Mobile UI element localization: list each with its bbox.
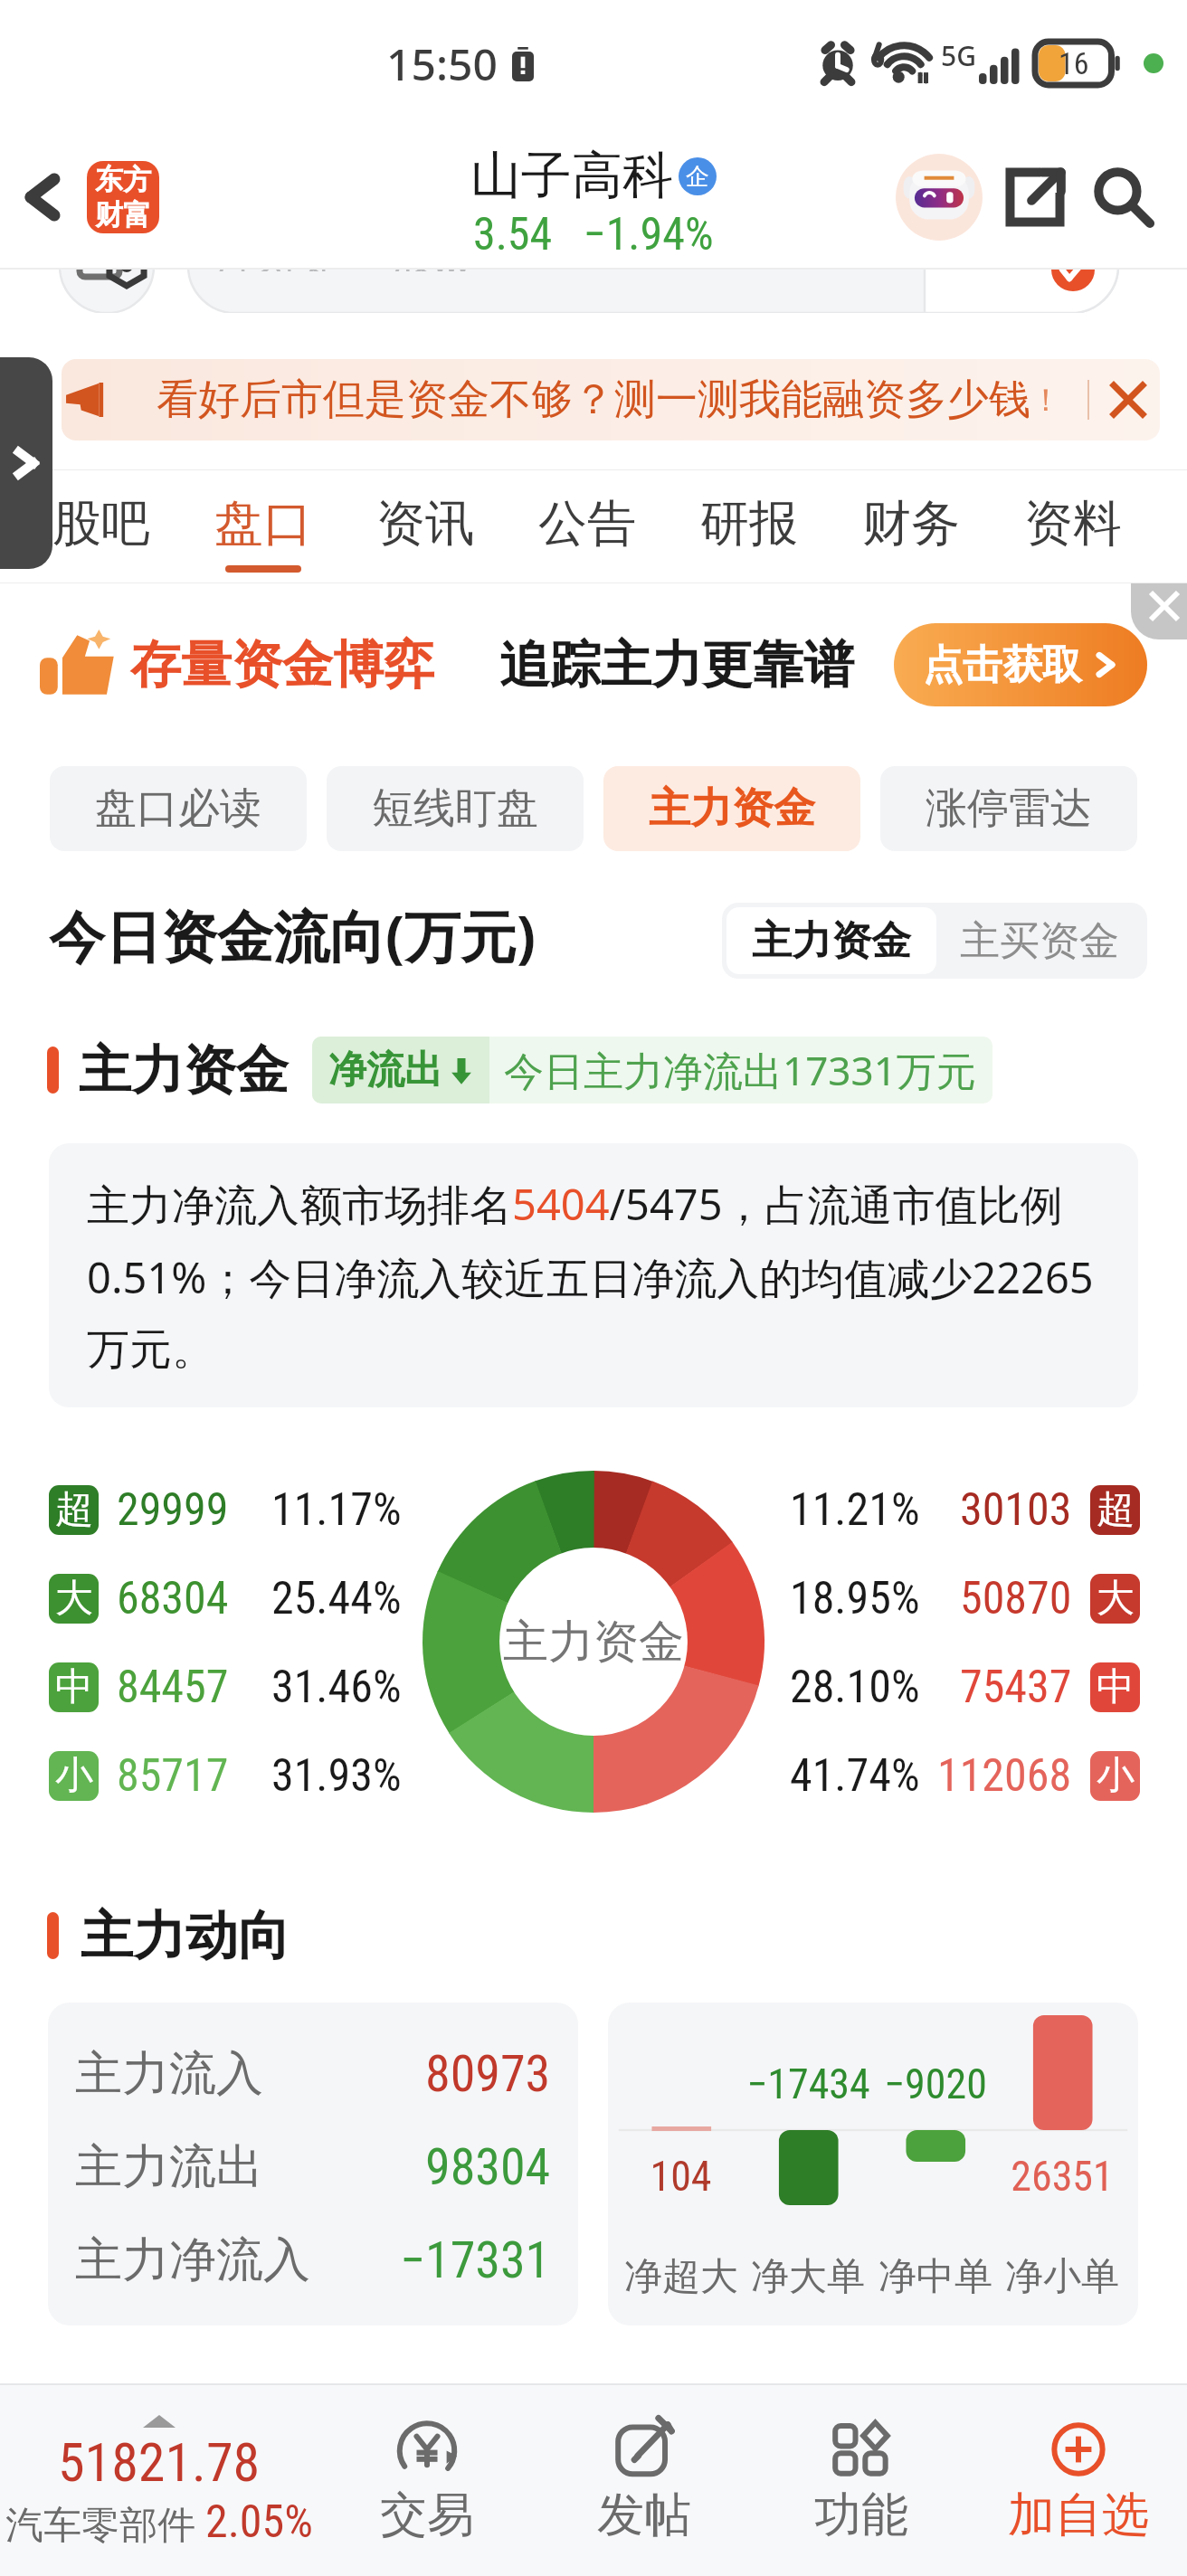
staticText: 加自选 xyxy=(1008,2486,1149,2545)
staticText: 财富 xyxy=(95,197,151,232)
staticText: 84457 xyxy=(117,1661,229,1714)
staticText: −9020 xyxy=(884,2060,987,2108)
staticText: 3.54 −1.94% xyxy=(473,208,714,261)
button[interactable]: Added to watchlist xyxy=(993,268,1187,313)
staticText: 发帖 xyxy=(597,2486,691,2545)
staticText: 资讯 xyxy=(376,493,474,554)
staticText: 今日资金流向(万元) xyxy=(49,897,537,974)
staticText: 短线盯盘 xyxy=(372,782,538,835)
staticText: 主力净流入额市场排名5404/5475，占流通市值比例0.51%；今日净流入较近… xyxy=(87,1175,1100,1377)
staticText: 75437 xyxy=(960,1661,1072,1714)
staticText: 112068 xyxy=(937,1749,1072,1803)
staticText: 68304 xyxy=(117,1572,229,1625)
button[interactable]: East Money home xyxy=(87,161,159,233)
button[interactable]: 涨停雷达 xyxy=(880,766,1137,851)
button[interactable]: 主买资金 xyxy=(960,907,1119,974)
staticText: 净流出 xyxy=(328,1046,442,1094)
staticText: 净大单 xyxy=(751,2253,865,2301)
staticText: 11.21% xyxy=(790,1483,920,1537)
staticText: 大 xyxy=(1097,1575,1135,1623)
staticText: 28.10% xyxy=(790,1661,920,1714)
button[interactable]: 股吧 xyxy=(52,470,150,583)
button[interactable]: 资讯 xyxy=(376,470,474,583)
button[interactable]: Search xyxy=(1080,154,1167,241)
staticText: 41.74% xyxy=(790,1749,920,1803)
staticText: 看好后市但是资金不够？测一测我能融资多少钱 xyxy=(157,374,1030,426)
staticText: 汽车零部件 xyxy=(5,2497,205,2549)
staticText: 5G xyxy=(941,37,976,74)
staticText: 25.44% xyxy=(271,1572,402,1625)
staticText: 浮筹是 股… xyxy=(215,268,469,271)
staticText: −17434 xyxy=(746,2060,870,2108)
staticText: 中 xyxy=(55,1663,93,1711)
staticText: 净小单 xyxy=(1005,2253,1119,2301)
button[interactable]: 看好后市但是资金不够？测一测我能融资多少钱 xyxy=(62,359,1160,440)
staticText: 功能 xyxy=(814,2486,908,2545)
button[interactable]: 主力资金 xyxy=(752,907,911,974)
button[interactable]: AI assistant xyxy=(896,154,983,241)
staticText: 主力动向 xyxy=(81,1903,290,1969)
staticText: 大 xyxy=(55,1575,93,1623)
staticText: 股吧 xyxy=(52,493,150,554)
staticText: 今日主力净流出17331万元 xyxy=(504,1043,976,1097)
staticText: 研报 xyxy=(700,493,798,554)
staticText: 小 xyxy=(55,1752,93,1800)
button[interactable]: 财务 xyxy=(862,470,960,583)
staticText: 30103 xyxy=(960,1483,1072,1537)
staticText: 31.93% xyxy=(271,1749,402,1803)
staticText: 85717 xyxy=(117,1749,229,1803)
staticText: 主力资金 xyxy=(649,782,815,835)
button[interactable]: 点击获取 xyxy=(923,623,1118,706)
button[interactable]: Search stock xyxy=(188,268,993,313)
button[interactable]: 发帖 xyxy=(536,2385,753,2576)
staticText: 追踪主力更靠谱 xyxy=(499,633,854,697)
button[interactable]: Expand side panel xyxy=(0,357,52,569)
staticText: 财务 xyxy=(862,493,960,554)
button[interactable]: 主力资金 xyxy=(603,766,860,851)
staticText: 企 xyxy=(686,162,709,192)
staticText: 交易 xyxy=(380,2486,474,2545)
staticText: 超 xyxy=(1097,1486,1135,1534)
button[interactable]: 加自选 xyxy=(970,2385,1187,2576)
staticText: 主买资金 xyxy=(960,916,1119,966)
button[interactable]: 51821.78 xyxy=(0,2385,318,2576)
staticText: 18.95% xyxy=(790,1572,920,1625)
button[interactable]: Back xyxy=(0,154,87,241)
staticText: 小 xyxy=(1097,1752,1135,1800)
staticText: 主力流入 xyxy=(75,2044,263,2098)
button[interactable]: Close banner xyxy=(1102,374,1154,426)
staticText: 104 xyxy=(650,2152,712,2201)
staticText: 主力资金 xyxy=(752,916,911,966)
staticText: 98304 xyxy=(425,2137,551,2192)
button[interactable]: 功能 xyxy=(753,2385,970,2576)
staticText: 主力资金 xyxy=(503,1614,684,1671)
staticText: 26351 xyxy=(1011,2152,1114,2201)
staticText: 16 xyxy=(1059,45,1089,81)
button[interactable]: Compare stocks xyxy=(60,268,154,313)
button[interactable]: 公告 xyxy=(538,470,636,583)
button[interactable]: Share xyxy=(992,154,1078,241)
button[interactable]: Close ad xyxy=(1131,583,1187,639)
staticText: 超 xyxy=(55,1486,93,1534)
staticText: 资料 xyxy=(1024,493,1122,554)
button[interactable]: 交易 xyxy=(318,2385,536,2576)
staticText: 盘口 xyxy=(214,493,312,554)
button[interactable]: 研报 xyxy=(700,470,798,583)
staticText: 主力资金 xyxy=(79,1037,289,1103)
staticText: 11.17% xyxy=(271,1483,402,1537)
button[interactable]: 盘口必读 xyxy=(50,766,307,851)
staticText: 29999 xyxy=(117,1483,229,1537)
button[interactable]: 存量资金博弈 xyxy=(40,583,1147,746)
staticText: 加自选 xyxy=(930,268,1044,271)
button[interactable]: 短线盯盘 xyxy=(327,766,584,851)
staticText: 东方 xyxy=(95,162,151,197)
staticText: 公告 xyxy=(538,493,636,554)
staticText: 山子高科 xyxy=(470,144,673,208)
staticText: 31.46% xyxy=(271,1661,402,1714)
staticText: 主力流出 xyxy=(75,2137,263,2192)
staticText: 15:50 xyxy=(386,34,498,93)
staticText: 80973 xyxy=(425,2044,551,2098)
button[interactable]: 资料 xyxy=(1024,470,1122,583)
staticText: 点击获取 xyxy=(923,640,1082,690)
button[interactable]: 盘口 xyxy=(214,470,312,583)
